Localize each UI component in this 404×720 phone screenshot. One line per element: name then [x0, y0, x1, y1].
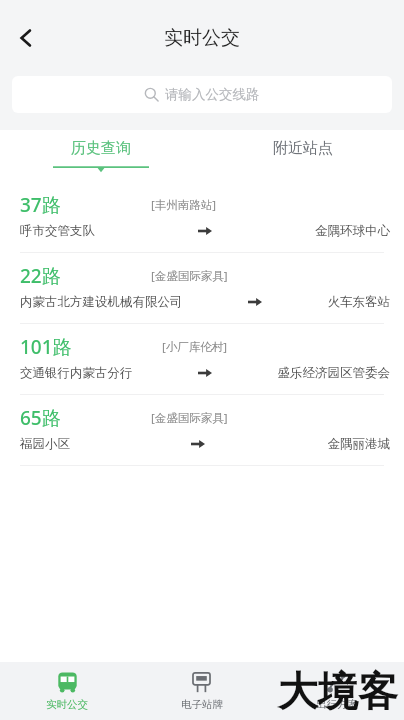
staticText: 实时公交: [164, 26, 240, 50]
button[interactable]: 电子站牌: [134, 662, 269, 720]
button[interactable]: 37路: [0, 182, 404, 253]
staticText: 内蒙古北方建设机械有限公司: [20, 294, 183, 310]
staticText: 37路: [20, 192, 61, 218]
button[interactable]: 请输入公交线路: [12, 76, 392, 113]
staticText: 22路: [20, 263, 61, 289]
button[interactable]: 出行方案: [269, 662, 404, 720]
button[interactable]: 附近站点: [202, 130, 404, 182]
staticText: 101路: [20, 334, 72, 360]
staticText: 65路: [20, 405, 61, 431]
staticText: [小厂库伦村]: [162, 339, 228, 355]
button[interactable]: 65路: [0, 395, 404, 466]
staticText: 电子站牌: [181, 698, 223, 711]
staticText: 金隅丽港城: [327, 436, 390, 452]
staticText: [金盛国际家具]: [151, 268, 228, 284]
button[interactable]: Back: [4, 16, 48, 60]
staticText: 火车东客站: [327, 294, 390, 310]
staticText: 金隅环球中心: [315, 223, 390, 239]
staticText: 呼市交管支队: [20, 223, 95, 239]
button[interactable]: 实时公交: [0, 662, 134, 720]
button[interactable]: 历史查询: [0, 130, 202, 182]
staticText: 福园小区: [20, 436, 70, 452]
staticText: 盛乐经济园区管委会: [277, 365, 390, 381]
staticText: 附近站点: [273, 139, 333, 158]
staticText: [丰州南路站]: [151, 197, 217, 213]
staticText: 大境客: [278, 666, 398, 716]
staticText: 请输入公交线路: [165, 86, 260, 103]
button[interactable]: 22路: [0, 253, 404, 324]
button[interactable]: 101路: [0, 324, 404, 395]
staticText: 实时公交: [46, 698, 88, 711]
staticText: 历史查询: [71, 139, 131, 158]
staticText: 交通银行内蒙古分行: [20, 365, 133, 381]
staticText: 出行方案: [316, 698, 358, 711]
staticText: [金盛国际家具]: [151, 410, 228, 426]
